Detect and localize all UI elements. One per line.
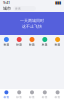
staticText: 标签 bbox=[16, 95, 22, 99]
staticText: 标签 bbox=[29, 95, 35, 99]
staticText: 标签 bbox=[55, 95, 61, 99]
staticText: 标签 bbox=[3, 95, 9, 99]
staticText: 标题 bbox=[3, 43, 9, 46]
staticText: 标题 bbox=[55, 43, 61, 46]
staticText: 一天两城同时 bbox=[20, 18, 44, 23]
staticText: 9:41 bbox=[3, 0, 10, 5]
staticText: 城市 bbox=[3, 6, 11, 11]
staticText: 搜索 bbox=[15, 7, 21, 10]
staticText: 这不止飞快 bbox=[22, 24, 42, 29]
staticText: 标签 bbox=[42, 95, 48, 99]
staticText: 标题 bbox=[29, 43, 35, 46]
staticText: 标题 bbox=[16, 43, 22, 46]
staticText: ▮▮▮ bbox=[55, 0, 61, 5]
staticText: 标题 bbox=[42, 43, 48, 46]
